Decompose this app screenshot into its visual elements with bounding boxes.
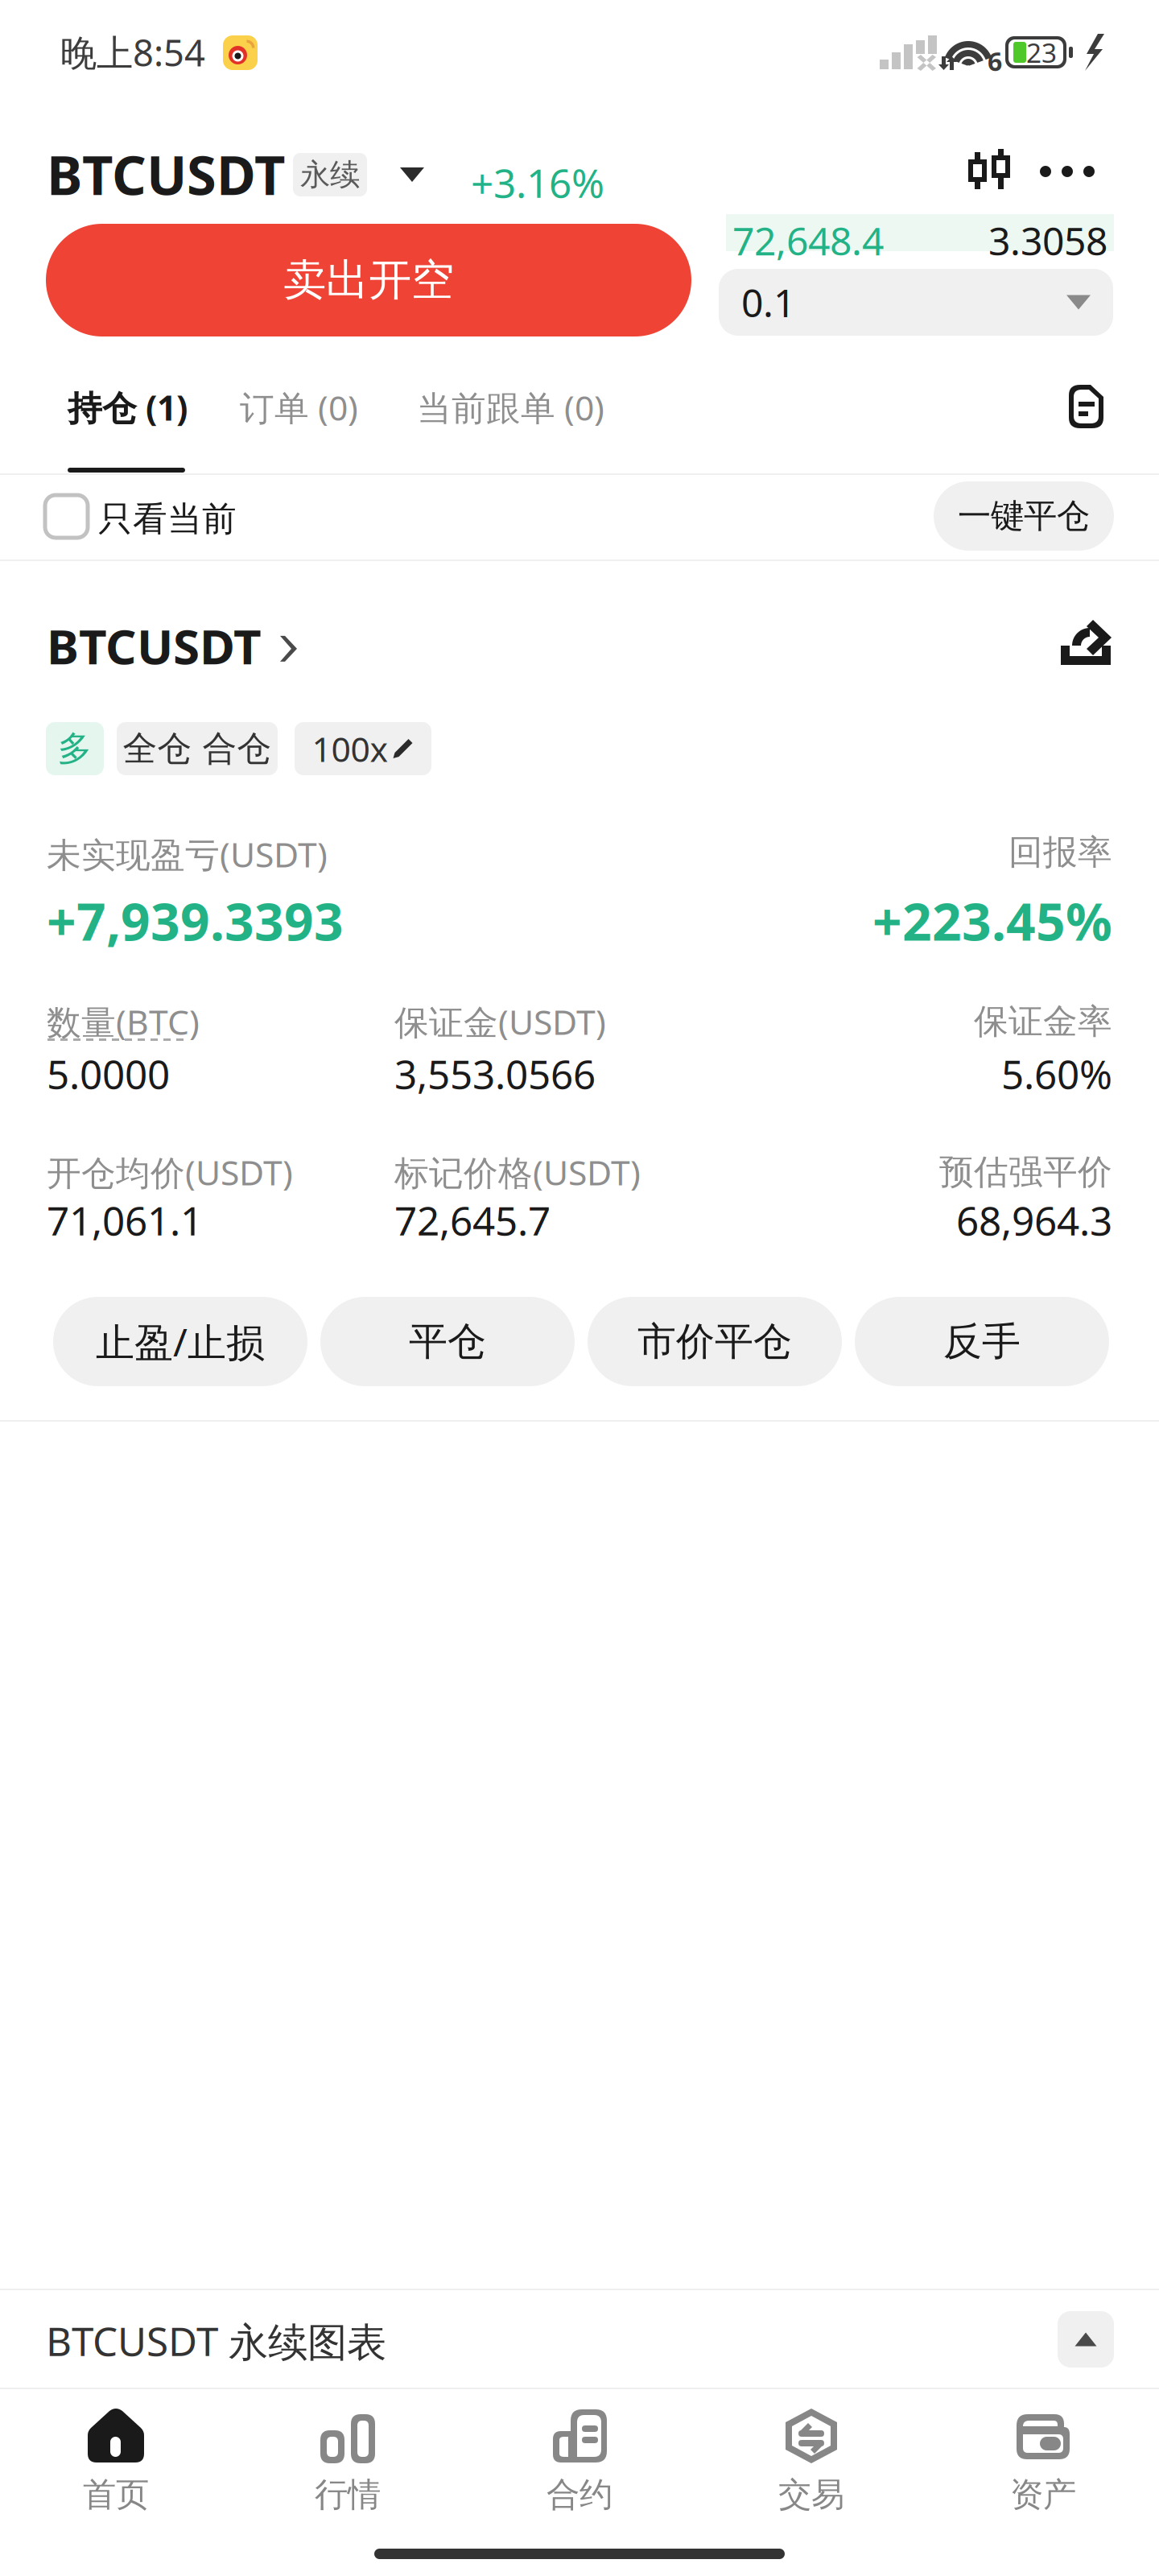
staticText: 止盈/止损	[96, 1315, 265, 1368]
staticText: 开仓均价(USDT)	[47, 1149, 293, 1196]
staticText: 回报率	[1008, 831, 1112, 874]
staticText: 晚上8:54	[60, 27, 205, 77]
staticText: 23	[1026, 34, 1057, 71]
staticText: BTCUSDT	[47, 138, 285, 211]
staticText: 首页	[83, 2474, 149, 2516]
button[interactable]: 持仓 (1)	[68, 384, 188, 431]
button[interactable]: 当前跟单 (0)	[417, 384, 604, 431]
staticText: 订单 (0)	[240, 384, 358, 431]
staticText: BTCUSDT	[47, 613, 262, 678]
staticText: 0.1	[741, 276, 795, 329]
staticText: 预估强平价	[939, 1151, 1112, 1194]
staticText: 3,553.0566	[394, 1046, 596, 1101]
staticText: 未实现盈亏(USDT)	[47, 831, 328, 878]
staticText: 反手	[943, 1317, 1021, 1366]
staticText: 5.0000	[47, 1046, 170, 1101]
staticText: 行情	[315, 2474, 381, 2516]
staticText: 全仓 合仓	[123, 727, 272, 770]
button[interactable]: 首页	[0, 2389, 232, 2538]
button[interactable]: 0.1	[719, 269, 1113, 336]
button[interactable]: Chart	[963, 149, 1015, 194]
staticText: 持仓 (1)	[68, 384, 188, 431]
button[interactable]: Only show current	[45, 495, 88, 538]
staticText: +223.45%	[872, 885, 1112, 956]
staticText: 6	[988, 43, 1002, 79]
button[interactable]: 反手	[855, 1297, 1109, 1386]
staticText: BTCUSDT 永续图表	[46, 2314, 386, 2368]
staticText: 平仓	[409, 1317, 486, 1366]
staticText: 保证金(USDT)	[394, 998, 606, 1045]
staticText: 68,964.3	[956, 1193, 1112, 1247]
staticText: 数量(BTC)	[47, 998, 200, 1045]
button[interactable]: Expand chart	[1058, 2311, 1114, 2368]
button[interactable]: 合约	[464, 2389, 695, 2538]
button[interactable]: 止盈/止损	[53, 1297, 307, 1386]
staticText: 市价平仓	[637, 1317, 792, 1366]
staticText: 多	[58, 727, 92, 770]
staticText: 合约	[547, 2474, 612, 2516]
staticText: +3.16%	[471, 155, 604, 209]
staticText: 72,648.4	[732, 214, 884, 267]
staticText: 资产	[1010, 2474, 1076, 2516]
staticText: 保证金率	[974, 1000, 1112, 1043]
staticText: +7,939.3393	[47, 885, 344, 956]
staticText: 只看当前	[98, 497, 237, 541]
staticText: 3.3058	[988, 214, 1107, 267]
button[interactable]: 平仓	[320, 1297, 575, 1386]
button[interactable]: Orders	[1064, 384, 1108, 429]
staticText: 当前跟单 (0)	[417, 384, 604, 431]
button[interactable]: 资产	[927, 2389, 1159, 2538]
button[interactable]: 一键平仓	[934, 481, 1114, 551]
button[interactable]: 卖出开空	[46, 224, 691, 336]
button[interactable]: 交易	[695, 2389, 927, 2538]
staticText: 100x	[312, 725, 388, 772]
button[interactable]: 市价平仓	[588, 1297, 842, 1386]
button[interactable]: 行情	[232, 2389, 464, 2538]
staticText: 交易	[778, 2474, 844, 2516]
button[interactable]: BTCUSDT	[47, 613, 299, 678]
staticText: 卖出开空	[283, 253, 454, 307]
staticText: 标记价格(USDT)	[394, 1149, 641, 1196]
staticText: 永续	[300, 156, 360, 194]
staticText: 71,061.1	[47, 1193, 203, 1247]
staticText: 一键平仓	[958, 495, 1090, 537]
button[interactable]: 订单 (0)	[240, 384, 358, 431]
button[interactable]: Share	[1061, 618, 1111, 665]
button[interactable]: More	[1040, 149, 1095, 194]
staticText: 72,645.7	[394, 1193, 551, 1247]
staticText: 5.60%	[1001, 1046, 1112, 1101]
